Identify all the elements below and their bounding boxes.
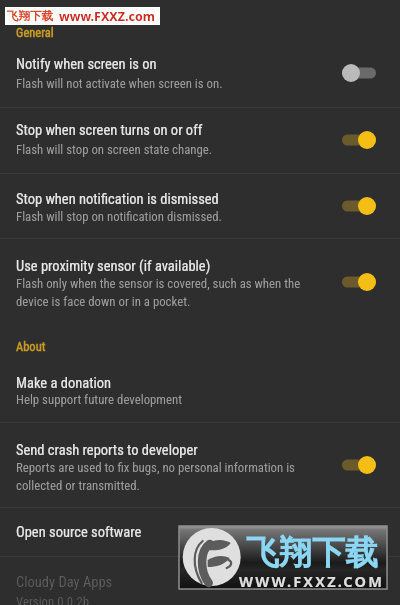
staticText: Flash will stop on screen state change.	[16, 142, 213, 157]
button[interactable]	[0, 508, 400, 555]
button[interactable]: Switch on	[337, 268, 381, 296]
staticText: Send crash reports to developer	[16, 442, 198, 459]
button[interactable]	[0, 360, 400, 421]
button[interactable]: Switch on	[337, 451, 381, 479]
button[interactable]	[0, 174, 400, 238]
staticText: Flash will stop on notification dismisse…	[16, 209, 222, 224]
staticText: Notify when screen is on	[16, 56, 157, 73]
button[interactable]	[0, 108, 400, 173]
staticText: Flash only when the sensor is covered, s…	[16, 276, 316, 309]
button[interactable]	[0, 42, 400, 107]
staticText: Open source software	[16, 524, 142, 541]
staticText: Cloudy Day Apps	[16, 574, 113, 591]
button[interactable]: Switch on	[337, 126, 381, 154]
staticText: About	[16, 339, 46, 354]
staticText: Use proximity sensor (if available)	[16, 258, 211, 275]
staticText: Make a donation	[16, 375, 112, 392]
button[interactable]: Switch on	[337, 192, 381, 220]
staticText: General	[16, 25, 54, 40]
staticText: Help support future development	[16, 392, 182, 407]
staticText: Version 0.0.2b	[16, 594, 90, 605]
staticText: 飞翔下载	[246, 532, 378, 574]
staticText: Flash will not activate when screen is o…	[16, 76, 223, 91]
staticText: Stop when screen turns on or off	[16, 122, 203, 139]
staticText: Stop when notification is dismissed	[16, 191, 219, 208]
button[interactable]: Switch off	[337, 59, 381, 87]
staticText: www.FXXZ.com	[59, 8, 155, 25]
staticText: WWW.FXXZ.COM	[239, 571, 385, 591]
button[interactable]	[0, 422, 400, 507]
staticText: Reports are used to fix bugs, no persona…	[16, 460, 316, 493]
button[interactable]	[0, 239, 400, 320]
staticText: 飞翔下载	[7, 9, 53, 23]
